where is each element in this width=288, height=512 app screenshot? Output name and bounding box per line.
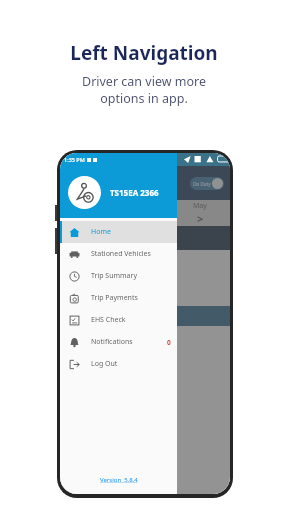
staticText: Driver can view more options in app.	[82, 73, 206, 106]
button[interactable]: On Duty	[190, 177, 224, 190]
staticText: TS15EA 2366	[110, 187, 159, 198]
button[interactable]: EHS Check	[60, 309, 177, 331]
button[interactable]: Log Out	[60, 353, 177, 375]
staticText: Notifications	[91, 337, 133, 347]
staticText: Home	[91, 227, 111, 237]
button[interactable]: Trip Summary	[60, 265, 177, 287]
button[interactable]: Stationed Vehicles	[60, 243, 177, 265]
staticText: On Duty	[193, 181, 211, 187]
staticText: Trip Summary	[91, 271, 138, 281]
staticText: Trip Payments	[91, 293, 138, 303]
button[interactable]: Notifications	[60, 331, 177, 353]
button[interactable]: Trip Payments	[60, 287, 177, 309]
staticText: 0	[167, 338, 171, 347]
staticText: Left Navigation	[70, 40, 218, 66]
staticText: Stationed Vehicles	[91, 249, 151, 259]
staticText: Fr 20	[84, 205, 91, 221]
button[interactable]: Version 5.8.4	[100, 476, 138, 484]
button[interactable]: Start Trip	[66, 306, 230, 326]
button[interactable]: Home	[60, 221, 177, 243]
staticText: Log Out	[91, 359, 118, 369]
staticText: May	[193, 201, 207, 211]
staticText: Sa 21	[139, 205, 146, 221]
staticText: Time : 1:30 PM	[126, 334, 171, 343]
staticText: ago. Please renew it.	[66, 269, 129, 278]
staticText: >	[197, 211, 204, 226]
staticText: EHS Check	[91, 315, 126, 325]
staticText: 1:35 PM	[64, 156, 85, 163]
